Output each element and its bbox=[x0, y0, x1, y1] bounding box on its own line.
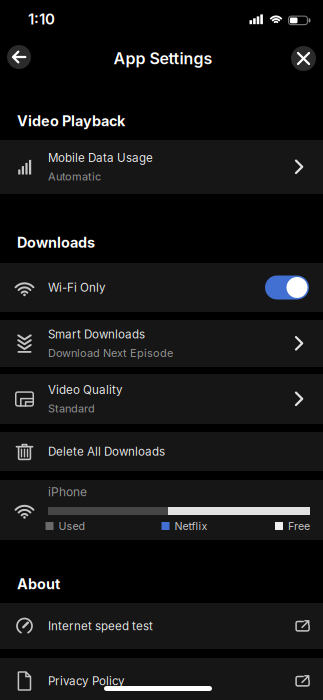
staticText: Video Quality bbox=[48, 383, 123, 397]
staticText: 1:10 bbox=[28, 10, 55, 28]
button[interactable]: Delete All Downloads bbox=[0, 432, 323, 471]
button[interactable]: Close bbox=[291, 46, 316, 71]
staticText: About bbox=[17, 575, 60, 593]
staticText: Automatic bbox=[48, 170, 101, 183]
button[interactable]: Back bbox=[7, 45, 31, 69]
staticText: Downloads bbox=[17, 234, 95, 251]
staticText: Used bbox=[58, 519, 85, 532]
button[interactable]: Smart Downloads bbox=[0, 320, 323, 367]
button[interactable]: Internet speed test bbox=[0, 603, 323, 649]
staticText: Mobile Data Usage bbox=[48, 151, 153, 165]
staticText: Privacy Policy bbox=[48, 674, 125, 688]
staticText: Free bbox=[288, 519, 310, 532]
staticText: Standard bbox=[48, 402, 95, 415]
staticText: Wi-Fi Only bbox=[48, 280, 106, 294]
staticText: App Settings bbox=[113, 49, 212, 68]
button[interactable]: Wi-Fi Only bbox=[0, 263, 323, 312]
staticText: Delete All Downloads bbox=[48, 444, 165, 458]
staticText: iPhone bbox=[48, 485, 87, 499]
button[interactable]: Mobile Data Usage bbox=[0, 140, 323, 194]
staticText: Download Next Episode bbox=[48, 346, 173, 360]
button[interactable]: Video Quality bbox=[0, 374, 323, 424]
staticText: Video Playback bbox=[17, 112, 125, 130]
staticText: Netflix bbox=[174, 519, 207, 532]
button[interactable]: Privacy Policy bbox=[0, 658, 323, 700]
staticText: Internet speed test bbox=[48, 619, 153, 633]
staticText: Smart Downloads bbox=[48, 327, 145, 341]
